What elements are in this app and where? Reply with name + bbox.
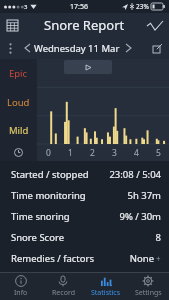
button[interactable]: Next day [120, 37, 136, 59]
staticText: Statistics [91, 288, 121, 298]
staticText: 5 [156, 147, 161, 159]
button[interactable]: More options [0, 37, 20, 59]
button[interactable]: Wednesday 11 Mar [34, 42, 120, 55]
staticText: 0 [46, 147, 51, 159]
staticText: 1 [68, 147, 73, 159]
staticText: Settings [135, 288, 162, 298]
staticText: 3 [112, 147, 117, 159]
staticText: Mild [9, 124, 29, 137]
staticText: Loud [7, 96, 30, 109]
button[interactable]: Share [145, 37, 169, 59]
button[interactable]: Previous day [20, 37, 34, 59]
button[interactable]: Remedies / factors [0, 248, 169, 269]
staticText: 2 [90, 147, 95, 159]
staticText: 17:56 [70, 2, 88, 12]
button[interactable]: Trends [141, 13, 169, 37]
staticText: Record [52, 288, 75, 298]
button[interactable]: Time snoring [0, 206, 169, 227]
staticText: Info [14, 288, 28, 298]
button[interactable]: Settings [127, 273, 169, 300]
staticText: + [156, 253, 161, 264]
button[interactable]: Started / stopped [0, 164, 169, 185]
staticText: None [129, 252, 154, 265]
staticText: 8 [155, 231, 161, 244]
staticText: Remedies / factors [11, 252, 94, 265]
staticText: Started / stopped [11, 168, 89, 181]
staticText: Snore Score [11, 231, 65, 244]
staticText: 3 [24, 3, 28, 11]
staticText: 23% [136, 2, 149, 11]
staticText: 9% / 30m [119, 210, 161, 223]
staticText: Time snoring [11, 210, 70, 223]
button[interactable]: Calendar [0, 13, 24, 37]
staticText: Epic [9, 67, 28, 80]
staticText: 23:08 / 5:04 [109, 168, 161, 181]
button[interactable]: Time monitoring [0, 185, 169, 206]
button[interactable]: Record [42, 273, 84, 300]
staticText: Time monitoring [11, 189, 86, 202]
button[interactable]: Info [0, 273, 42, 300]
staticText: 4 [134, 147, 139, 159]
button[interactable]: Snore Score [0, 227, 169, 248]
staticText: 5h 37m [127, 189, 161, 202]
button[interactable]: Play recording [64, 60, 112, 74]
button[interactable]: Statistics [85, 273, 127, 300]
staticText: Snore Report [44, 16, 125, 34]
